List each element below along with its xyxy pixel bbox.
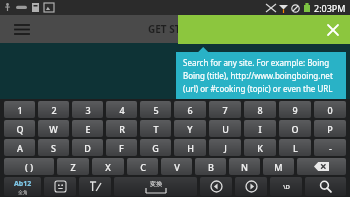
button[interactable]: 8	[244, 101, 276, 118]
button[interactable]: 1	[4, 101, 35, 118]
button[interactable]	[305, 177, 346, 196]
button[interactable]: G	[140, 139, 171, 156]
staticText: E	[85, 123, 91, 135]
button[interactable]: 3	[72, 101, 103, 118]
staticText: 1	[17, 104, 23, 116]
staticText: F	[119, 142, 124, 154]
staticText: Z	[70, 161, 76, 173]
button[interactable]: T	[140, 120, 171, 137]
staticText: G	[152, 142, 159, 154]
button[interactable]: Ab12	[4, 177, 41, 196]
button[interactable]: ( )	[4, 158, 54, 175]
button[interactable]: 7	[209, 101, 241, 118]
button[interactable]: 5	[140, 101, 171, 118]
button[interactable]: X	[92, 158, 124, 175]
staticText: Ab12	[14, 179, 32, 189]
button[interactable]: H	[174, 139, 206, 156]
staticText: N	[241, 161, 248, 173]
staticText: 3	[85, 104, 91, 116]
button[interactable]: Z	[57, 158, 89, 175]
button[interactable]	[235, 177, 267, 196]
staticText: 4	[119, 104, 125, 116]
staticText: K	[257, 142, 263, 154]
button[interactable]: 変換	[114, 177, 197, 196]
button[interactable]: P	[314, 120, 346, 137]
button[interactable]	[297, 158, 346, 175]
button[interactable]: Y	[174, 120, 206, 137]
staticText: A	[17, 142, 23, 154]
staticText: 変換	[150, 180, 162, 188]
staticText: X	[105, 161, 111, 173]
button[interactable]: A	[4, 139, 35, 156]
staticText: -	[329, 142, 332, 154]
button[interactable]: U	[209, 120, 241, 137]
staticText: J	[224, 142, 227, 154]
staticText: 8	[257, 104, 263, 116]
staticText: 7	[222, 104, 228, 116]
button[interactable]: K	[244, 139, 276, 156]
button[interactable]: 9	[279, 101, 311, 118]
button[interactable]: Q	[4, 120, 35, 137]
button[interactable]: B	[195, 158, 226, 175]
button[interactable]	[79, 177, 111, 196]
staticText: (url) or #cooking (topic) or even the UR…	[183, 83, 333, 94]
button[interactable]: W	[38, 120, 69, 137]
button[interactable]: L	[279, 139, 311, 156]
staticText: V	[174, 161, 180, 173]
staticText: P	[327, 123, 333, 135]
button[interactable]: Menu	[12, 19, 32, 39]
staticText: 2:03PM	[314, 2, 346, 14]
button[interactable]: -	[314, 139, 346, 156]
staticText: O	[291, 123, 299, 135]
staticText: 2	[51, 104, 57, 116]
button[interactable]: 0	[314, 101, 346, 118]
staticText: H	[187, 142, 194, 154]
staticText: Y	[187, 123, 193, 135]
button[interactable]: S	[38, 139, 69, 156]
staticText: Search for any site. For example: Boing	[183, 57, 330, 68]
staticText: 0	[327, 104, 333, 116]
staticText: B	[208, 161, 214, 173]
staticText: M	[274, 161, 283, 173]
button[interactable]: 6	[174, 101, 206, 118]
staticText: Q	[16, 123, 24, 135]
button[interactable]: M	[263, 158, 294, 175]
button[interactable]: D	[72, 139, 103, 156]
button[interactable]: J	[209, 139, 241, 156]
button[interactable]: I	[244, 120, 276, 137]
button[interactable]: N	[229, 158, 260, 175]
button[interactable]	[44, 177, 76, 196]
staticText: GET STARTED	[148, 22, 212, 36]
staticText: U	[222, 123, 229, 135]
staticText: ( )	[25, 161, 33, 173]
button[interactable]: C	[127, 158, 158, 175]
button[interactable]: O	[279, 120, 311, 137]
button[interactable]: R	[106, 120, 137, 137]
staticText: 9	[292, 104, 298, 116]
button[interactable]	[200, 177, 232, 196]
staticText: S	[51, 142, 56, 154]
staticText: L	[293, 142, 298, 154]
button[interactable]: Close	[324, 21, 342, 39]
staticText: T	[153, 123, 159, 135]
button[interactable]: E	[72, 120, 103, 137]
staticText: 5	[153, 104, 159, 116]
staticText: W	[49, 123, 58, 135]
staticText: 全角	[18, 189, 28, 195]
staticText: Boing (title), http://www.boingboing.net	[183, 70, 333, 81]
button[interactable]: 2	[38, 101, 69, 118]
button[interactable]: 4	[106, 101, 137, 118]
staticText: \D	[283, 183, 290, 191]
staticText: R	[119, 123, 125, 135]
staticText: D	[84, 142, 91, 154]
button[interactable]: F	[106, 139, 137, 156]
staticText: 6	[187, 104, 193, 116]
staticText: I	[258, 123, 262, 135]
button[interactable]: \D	[270, 177, 302, 196]
staticText: C	[140, 161, 146, 173]
button[interactable]: V	[161, 158, 192, 175]
